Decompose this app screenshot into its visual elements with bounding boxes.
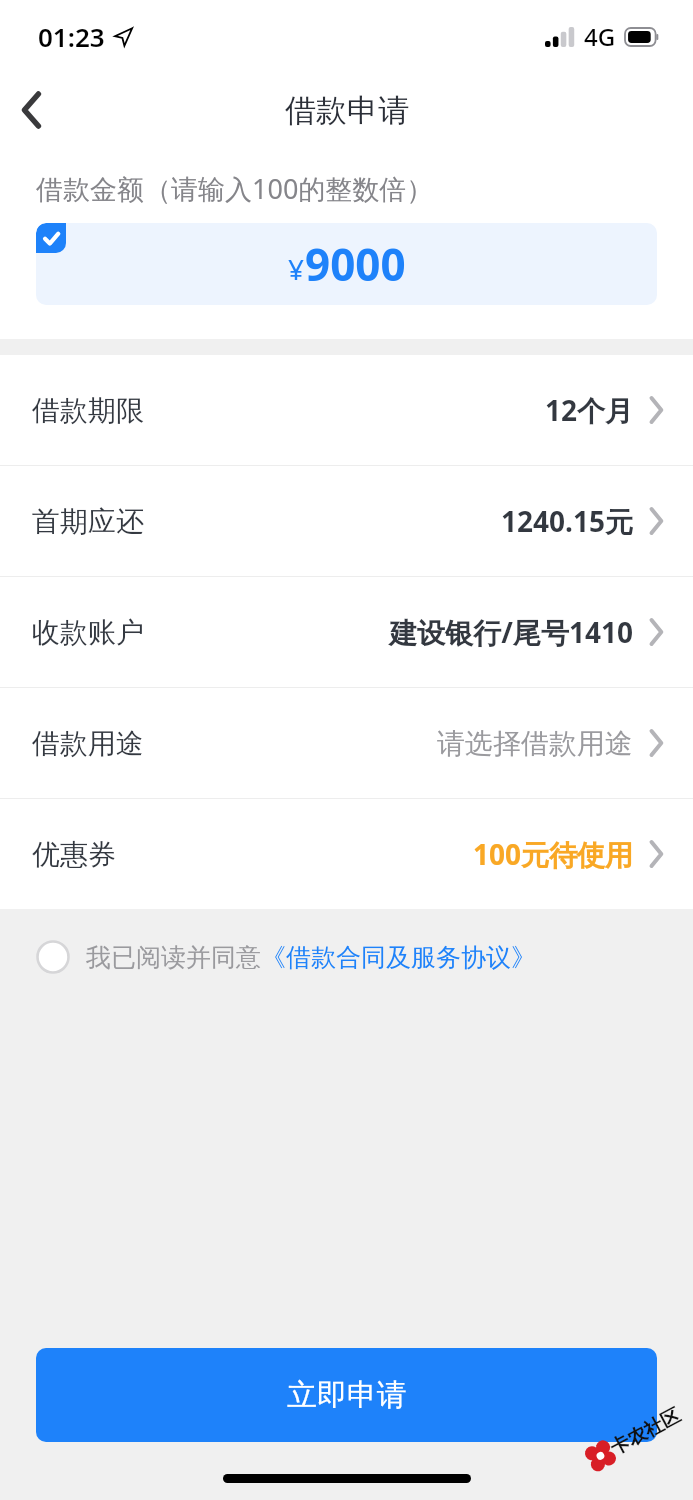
staticText: 收款账户 (32, 615, 144, 650)
staticText: 请选择借款用途 (437, 726, 633, 761)
staticText: 12个月 (544, 391, 633, 429)
button[interactable]: Back (0, 78, 64, 142)
staticText: 我已阅读并同意 (86, 942, 261, 973)
staticText: 1240.15元 (501, 502, 633, 540)
button[interactable]: 收款账户 (0, 577, 693, 687)
staticText: 借款用途 (32, 726, 144, 761)
staticText: ¥ (288, 250, 305, 288)
button[interactable]: 借款期限 (0, 355, 693, 465)
button[interactable]: 立即申请 (36, 1348, 657, 1442)
staticText: 首期应还 (32, 504, 144, 539)
staticText: 借款期限 (32, 393, 144, 428)
staticText: 卡农社区 (606, 1403, 685, 1460)
staticText: 100元待使用 (472, 835, 633, 873)
staticText: 01:23 (38, 19, 105, 54)
staticText: 立即申请 (287, 1376, 407, 1414)
button[interactable]: 优惠券 (0, 799, 693, 909)
button[interactable]: ¥ (36, 223, 657, 305)
staticText: 借款金额（请输入100的整数倍） (36, 170, 434, 207)
staticText: 建设银行/尾号1410 (389, 613, 633, 651)
button[interactable]: 我已阅读并同意 (0, 909, 693, 1005)
button[interactable]: 首期应还 (0, 466, 693, 576)
staticText: 9000 (305, 234, 406, 294)
button[interactable]: 《借款合同及服务协议》 (261, 942, 536, 973)
staticText: 4G (584, 20, 616, 53)
staticText: 借款申请 (285, 91, 409, 130)
button[interactable]: 借款用途 (0, 688, 693, 798)
staticText: 优惠券 (32, 837, 116, 872)
